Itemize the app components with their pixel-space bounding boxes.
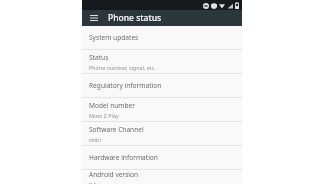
button[interactable]: System updates [82,26,242,49]
staticText: Software Channel [89,125,144,134]
button[interactable]: Open navigation menu [88,12,100,24]
button[interactable]: Model number [82,98,242,121]
button[interactable]: Status [82,50,242,73]
staticText: Moto Z Play [89,112,119,119]
staticText: Regulatory information [89,81,162,90]
button[interactable]: Regulatory information [82,74,242,97]
staticText: Phone number, signal, etc. [89,64,156,71]
button[interactable]: Hardware information [82,146,242,169]
staticText: retbr [89,136,102,143]
staticText: 7.0 [89,181,97,184]
staticText: System updates [89,33,139,42]
staticText: Status [89,53,109,62]
staticText: Model number [89,101,135,110]
button[interactable]: Android version [82,170,242,184]
button[interactable]: Software Channel [82,122,242,145]
staticText: Phone status [108,12,162,24]
staticText: Hardware information [89,153,158,162]
staticText: Android version [89,170,139,179]
